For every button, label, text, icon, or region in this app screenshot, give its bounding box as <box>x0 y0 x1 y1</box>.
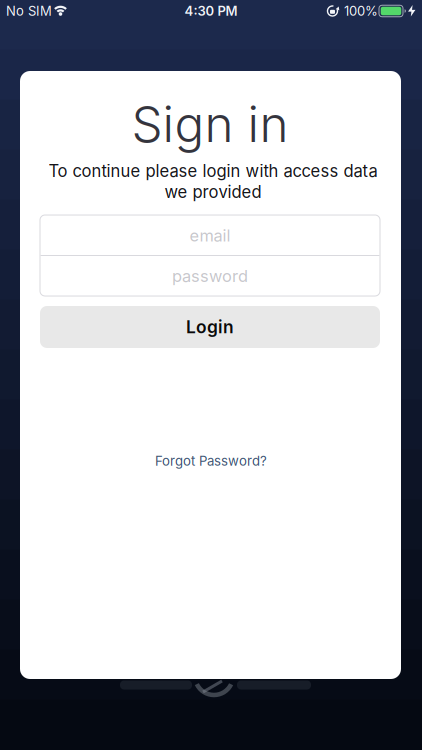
staticText: To continue please login with access dat… <box>48 161 377 181</box>
staticText: we provided <box>164 182 261 202</box>
button[interactable]: Forgot Password? <box>155 453 267 469</box>
button[interactable]: Login <box>40 306 380 348</box>
staticText: password <box>172 266 248 286</box>
staticText: Sign in <box>131 94 288 154</box>
button[interactable]: password <box>41 256 379 295</box>
staticText: email <box>189 226 230 245</box>
staticText: No SIM <box>6 3 52 19</box>
staticText: 4:30 PM <box>184 3 237 19</box>
staticText: Forgot Password? <box>155 453 267 469</box>
staticText: Login <box>186 316 234 337</box>
button[interactable]: email <box>41 216 379 255</box>
staticText: 100% <box>344 3 378 19</box>
